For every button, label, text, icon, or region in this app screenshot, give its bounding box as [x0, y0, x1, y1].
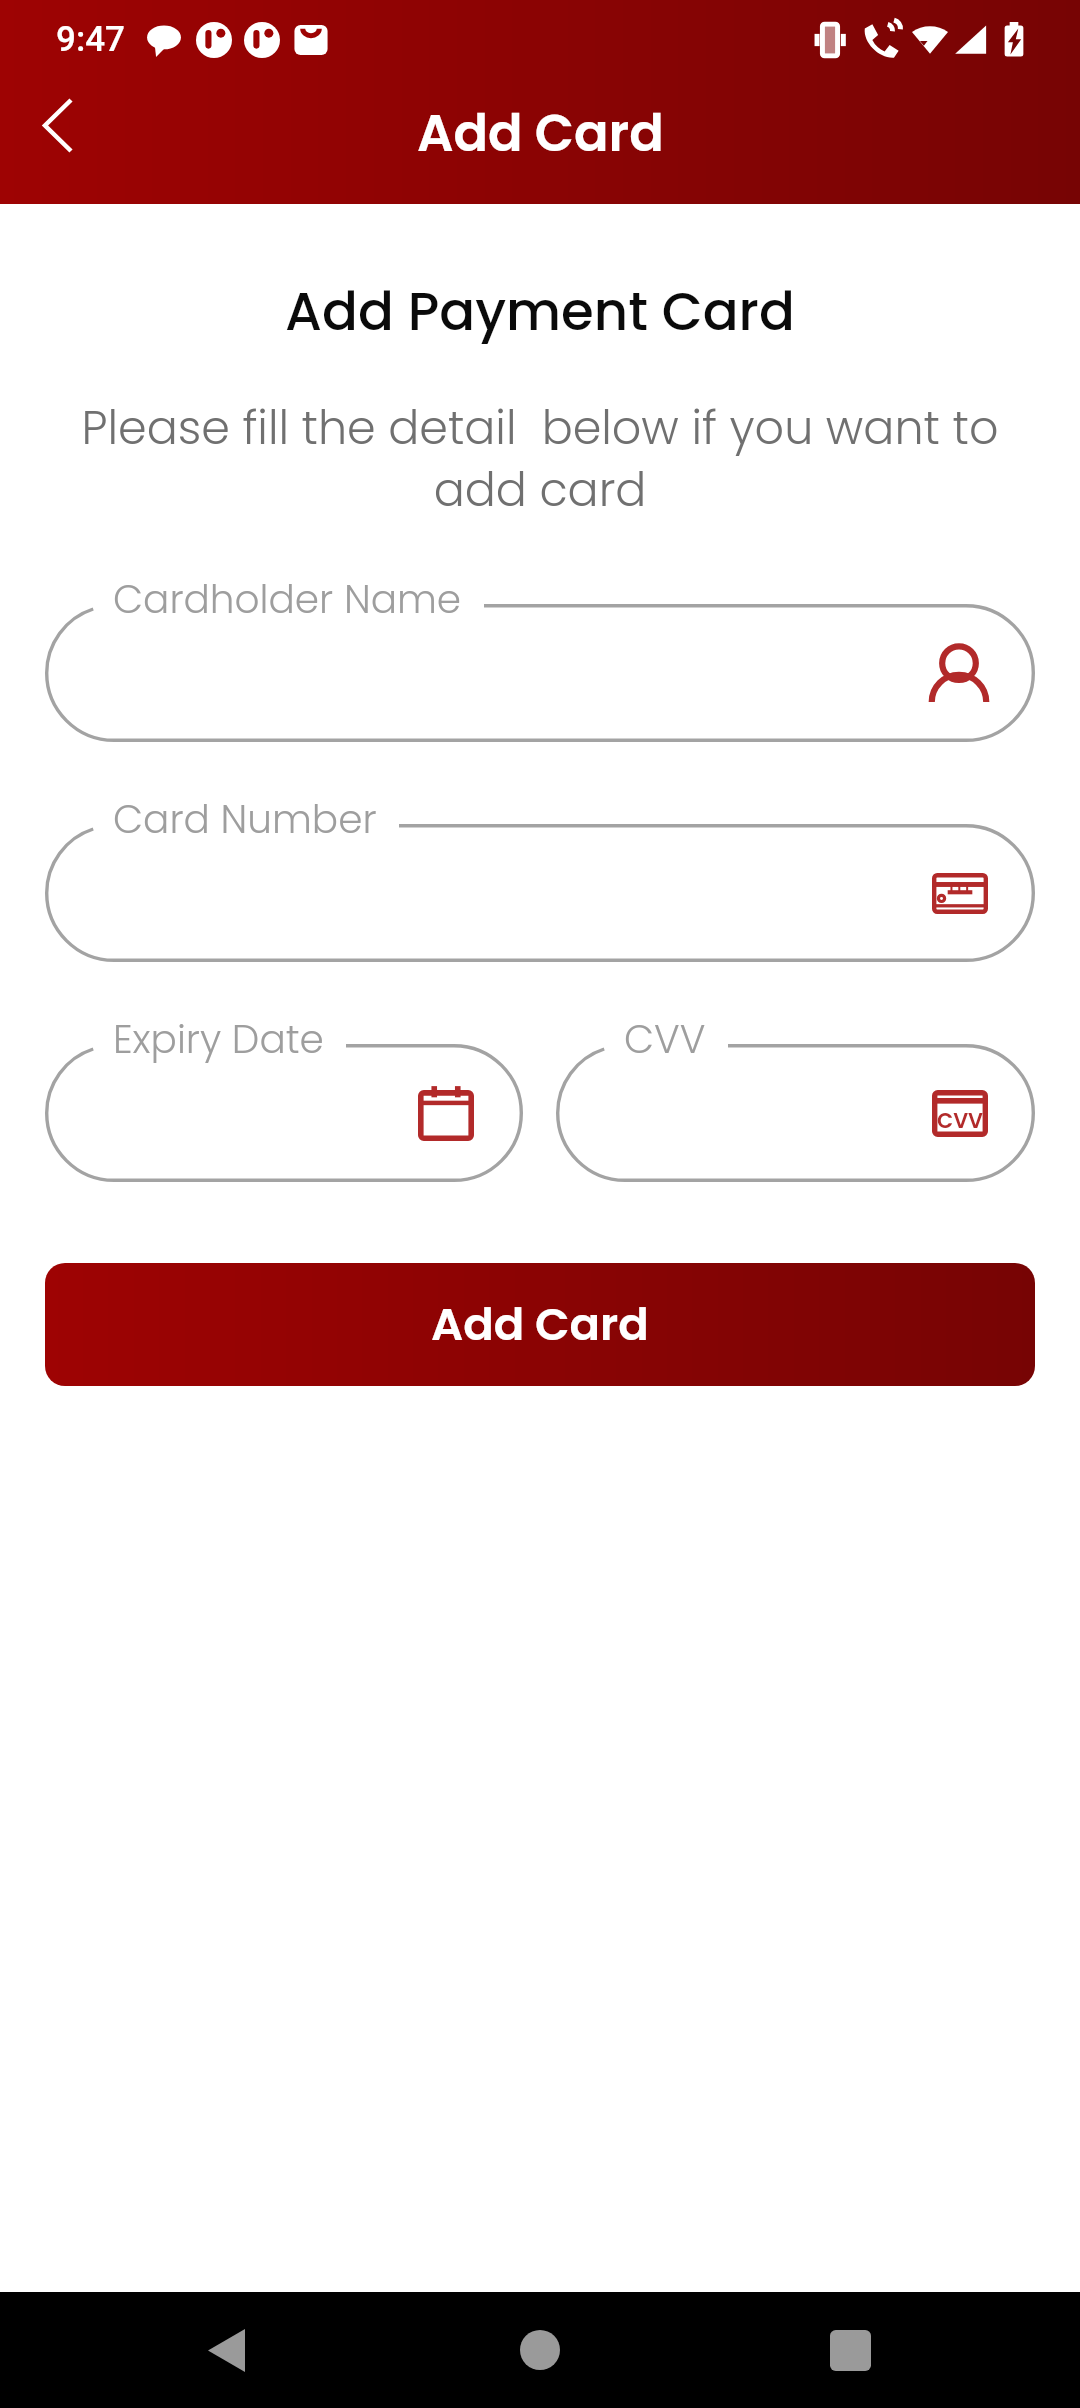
button[interactable]: Cardholder Name: [45, 604, 1035, 742]
staticText: Please fill the detail below if you want…: [56, 396, 1024, 522]
button[interactable]: Expiry Date: [45, 1044, 523, 1182]
button[interactable]: Card Number: [45, 824, 1035, 962]
button[interactable]: Recent apps: [810, 2310, 890, 2390]
button[interactable]: Add Card: [45, 1263, 1035, 1386]
staticText: Add Payment Card: [0, 274, 1080, 348]
staticText: Add Card: [431, 1293, 649, 1356]
staticText: CVV: [624, 1012, 706, 1067]
staticText: CVV: [937, 1106, 983, 1135]
button[interactable]: Home: [500, 2310, 580, 2390]
staticText: Cardholder Name: [113, 572, 462, 627]
button[interactable]: CVV: [556, 1044, 1035, 1182]
staticText: 9:47: [56, 19, 125, 60]
button[interactable]: Back: [186, 2310, 266, 2390]
staticText: Expiry Date: [113, 1012, 324, 1067]
staticText: Add Card: [417, 97, 664, 168]
staticText: Card Number: [113, 792, 377, 847]
button[interactable]: Back: [14, 81, 102, 169]
